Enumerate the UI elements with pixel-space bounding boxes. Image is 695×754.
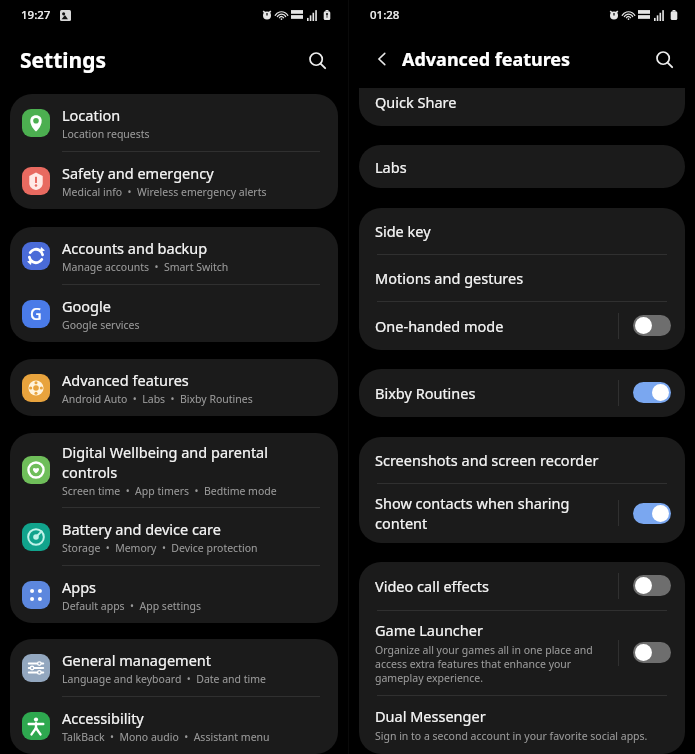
- staticText: Side key: [375, 221, 431, 241]
- button[interactable]: Toggle on: [633, 382, 671, 403]
- button[interactable]: Location: [10, 94, 338, 151]
- staticText: One-handed mode: [375, 316, 504, 336]
- button[interactable]: Toggle off: [633, 642, 671, 663]
- button[interactable]: Screenshots and screen recorder: [359, 437, 685, 483]
- button[interactable]: Motions and gestures: [359, 255, 685, 301]
- staticText: Apps: [62, 577, 97, 597]
- button[interactable]: Dual Messenger: [359, 696, 685, 754]
- staticText: Advanced features: [402, 47, 571, 72]
- staticText: Battery and device care: [62, 519, 221, 539]
- staticText: Digital Wellbeing and parental controls: [62, 442, 324, 482]
- staticText: Default apps • App settings: [62, 599, 202, 613]
- button[interactable]: Toggle on: [633, 503, 671, 524]
- button[interactable]: Battery and device care: [10, 508, 338, 565]
- button[interactable]: Side key: [359, 208, 685, 254]
- staticText: Location: [62, 105, 121, 125]
- staticText: Quick Share: [375, 92, 457, 112]
- button[interactable]: Accessibility: [10, 697, 338, 754]
- staticText: Video call effects: [375, 576, 489, 596]
- button[interactable]: Search: [300, 43, 334, 77]
- staticText: Organize all your games all in one place…: [375, 643, 593, 685]
- button[interactable]: Search: [647, 42, 681, 76]
- button[interactable]: Back: [369, 46, 395, 72]
- staticText: G: [30, 303, 42, 325]
- button[interactable]: Safety and emergency: [10, 152, 338, 209]
- button[interactable]: Labs: [359, 145, 685, 188]
- staticText: Location requests: [62, 127, 150, 141]
- button[interactable]: Quick Share: [359, 88, 685, 126]
- button[interactable]: Video call effects: [359, 562, 685, 610]
- button[interactable]: G: [10, 285, 338, 342]
- staticText: 19:27: [21, 7, 51, 23]
- staticText: Google services: [62, 318, 140, 332]
- staticText: Medical info • Wireless emergency alerts: [62, 185, 267, 199]
- staticText: Screen time • App timers • Bedtime mode: [62, 484, 277, 498]
- staticText: Manage accounts • Smart Switch: [62, 260, 229, 274]
- staticText: Google: [62, 296, 111, 316]
- staticText: Show contacts when sharing content: [375, 493, 570, 533]
- staticText: Language and keyboard • Date and time: [62, 672, 267, 686]
- staticText: Motions and gestures: [375, 268, 524, 288]
- button[interactable]: Apps: [10, 566, 338, 623]
- staticText: Bixby Routines: [375, 383, 476, 403]
- staticText: Accessibility: [62, 708, 144, 728]
- staticText: Labs: [375, 157, 407, 177]
- staticText: 01:28: [370, 7, 400, 23]
- staticText: Dual Messenger: [375, 706, 486, 726]
- button[interactable]: Digital Wellbeing and parental controls: [10, 433, 338, 507]
- staticText: Settings: [20, 46, 107, 75]
- staticText: Android Auto • Labs • Bixby Routines: [62, 392, 253, 406]
- button[interactable]: Advanced features: [10, 359, 338, 416]
- button[interactable]: Game Launcher: [359, 611, 685, 695]
- button[interactable]: One-handed mode: [359, 302, 685, 350]
- staticText: Advanced features: [62, 370, 189, 390]
- staticText: Game Launcher: [375, 620, 483, 640]
- button[interactable]: Accounts and backup: [10, 227, 338, 284]
- button[interactable]: Toggle off: [633, 315, 671, 336]
- button[interactable]: Bixby Routines: [359, 369, 685, 417]
- staticText: General management: [62, 650, 212, 670]
- staticText: Storage • Memory • Device protection: [62, 541, 258, 555]
- button[interactable]: Show contacts when sharing content: [359, 484, 685, 543]
- staticText: TalkBack • Mono audio • Assistant menu: [62, 730, 270, 744]
- button[interactable]: General management: [10, 639, 338, 696]
- staticText: Accounts and backup: [62, 238, 208, 258]
- staticText: Safety and emergency: [62, 163, 214, 183]
- staticText: Screenshots and screen recorder: [375, 450, 599, 470]
- button[interactable]: Toggle off: [633, 575, 671, 596]
- staticText: Sign in to a second account in your favo…: [375, 729, 648, 743]
